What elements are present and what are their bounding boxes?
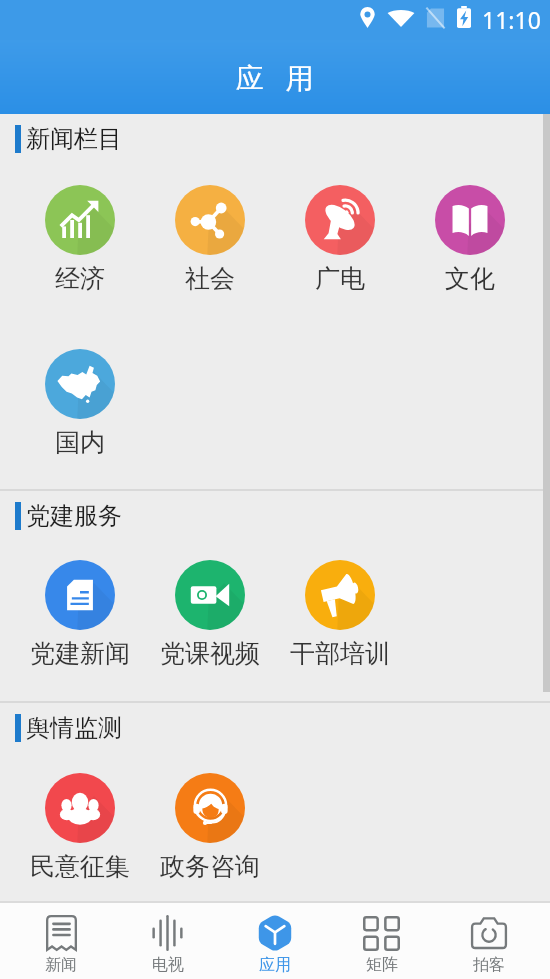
button[interactable]: 干部培训	[275, 560, 405, 669]
staticText: 拍客	[473, 955, 505, 975]
staticText: 新闻栏目	[26, 124, 122, 154]
staticText: 舆情监测	[26, 713, 122, 743]
other: 新闻	[46, 915, 77, 951]
staticText: 党建新闻	[30, 638, 130, 669]
staticText: 电视	[152, 955, 184, 975]
staticText: 党建服务	[26, 501, 122, 531]
button[interactable]: 应用	[221, 903, 328, 979]
staticText: 广电	[315, 263, 365, 294]
staticText: 干部培训	[290, 638, 390, 669]
button[interactable]: 新闻	[8, 903, 114, 979]
button[interactable]: 政务咨询	[145, 773, 275, 882]
other: 矩阵	[363, 916, 400, 951]
staticText: 民意征集	[30, 851, 130, 882]
button[interactable]: 党建新闻	[15, 560, 145, 669]
button[interactable]: 电视	[114, 903, 221, 979]
button[interactable]: 民意征集	[15, 773, 145, 882]
staticText: 经济	[55, 263, 105, 294]
button[interactable]: 矩阵	[328, 903, 435, 979]
button[interactable]: 经济	[15, 185, 145, 294]
staticText: 党课视频	[160, 638, 260, 669]
staticText: 新闻	[45, 955, 77, 975]
staticText: 矩阵	[366, 955, 398, 975]
other: 拍客	[471, 917, 507, 950]
button[interactable]: 拍客	[435, 903, 542, 979]
staticText: 11:10	[482, 4, 541, 35]
button[interactable]: 社会	[145, 185, 275, 294]
button[interactable]: 国内	[15, 349, 145, 458]
staticText: 文化	[445, 263, 495, 294]
staticText: 应用	[259, 955, 291, 975]
staticText: 应 用	[236, 58, 314, 96]
other: 应用	[257, 915, 293, 951]
staticText: 政务咨询	[160, 851, 260, 882]
staticText: 社会	[185, 263, 235, 294]
button[interactable]: 广电	[275, 185, 405, 294]
other: 电视	[151, 915, 184, 951]
button[interactable]: 文化	[405, 185, 535, 294]
staticText: 国内	[55, 427, 105, 458]
button[interactable]: 党课视频	[145, 560, 275, 669]
